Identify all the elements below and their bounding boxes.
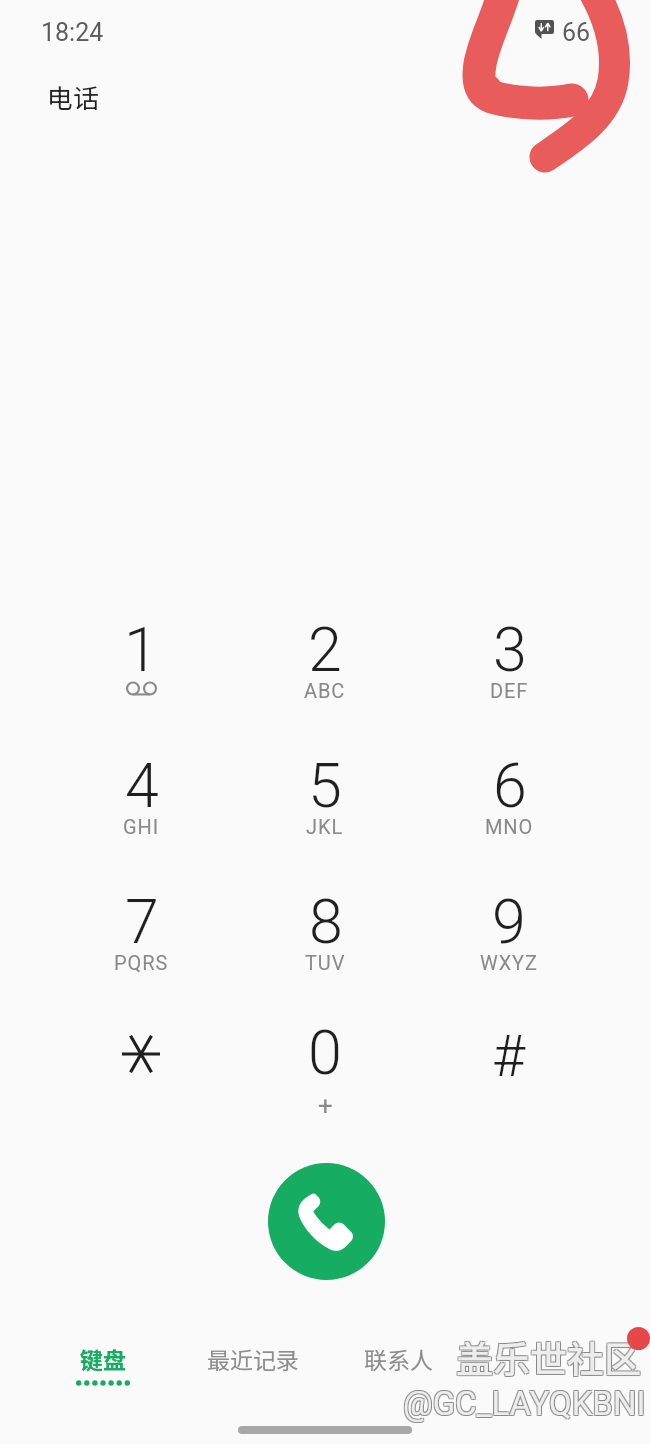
button[interactable]: 键盘 bbox=[25, 1320, 181, 1392]
button[interactable]: 最近记录 bbox=[182, 1320, 323, 1392]
staticText: @GC_LAYQKBNI bbox=[403, 1384, 646, 1423]
staticText: 盖乐世社区 bbox=[455, 1329, 640, 1383]
staticText: 5 bbox=[308, 750, 342, 821]
staticText: @GC_LAYQKBNI bbox=[402, 1385, 645, 1424]
staticText: 7 bbox=[125, 886, 159, 957]
staticText: 盖乐世社区 bbox=[455, 1331, 640, 1385]
button[interactable]: 8 bbox=[265, 878, 385, 990]
button[interactable]: 3 bbox=[449, 606, 569, 718]
staticText: 8 bbox=[309, 886, 343, 957]
button[interactable]: pound bbox=[449, 1009, 569, 1121]
staticText: PQRS bbox=[114, 951, 169, 974]
staticText: 最近记录 bbox=[207, 1342, 299, 1375]
other: Data transfer bbox=[535, 20, 554, 39]
button[interactable]: 联系人 bbox=[340, 1320, 456, 1392]
staticText: ABC bbox=[304, 679, 346, 702]
staticText: @GC_LAYQKBNI bbox=[402, 1383, 645, 1422]
staticText: 18:24 bbox=[41, 18, 104, 47]
staticText: WXYZ bbox=[480, 951, 538, 974]
button[interactable]: 1 bbox=[81, 606, 201, 718]
staticText: 6 bbox=[493, 750, 527, 821]
staticText: @GC_LAYQKBNI bbox=[404, 1385, 647, 1424]
staticText: 4 bbox=[125, 750, 159, 821]
staticText: + bbox=[318, 1091, 333, 1121]
staticText: JKL bbox=[306, 815, 344, 838]
staticText: # bbox=[492, 1023, 526, 1090]
staticText: 0 bbox=[308, 1017, 342, 1088]
staticText: 1 bbox=[124, 614, 158, 685]
button[interactable]: star bbox=[81, 1009, 201, 1121]
staticText: 2 bbox=[308, 614, 342, 685]
staticText: @GC_LAYQKBNI bbox=[404, 1383, 647, 1422]
button[interactable]: 2 bbox=[265, 606, 385, 718]
staticText: 盖乐世社区 bbox=[456, 1330, 641, 1384]
staticText: 盖乐世社区 bbox=[457, 1329, 642, 1383]
button[interactable]: 6 bbox=[449, 742, 569, 854]
button[interactable]: 4 bbox=[81, 742, 201, 854]
staticText: DEF bbox=[490, 679, 529, 702]
button[interactable]: 5 bbox=[265, 742, 385, 854]
staticText: 联系人 bbox=[364, 1342, 433, 1375]
button[interactable]: 7 bbox=[81, 878, 201, 990]
staticText: MNO bbox=[485, 815, 534, 838]
button[interactable]: 9 bbox=[449, 878, 569, 990]
staticText: 键盘 bbox=[80, 1342, 126, 1375]
staticText: TUV bbox=[305, 951, 346, 974]
staticText: 3 bbox=[493, 614, 527, 685]
staticText: 电话 bbox=[47, 78, 100, 116]
staticText: GHI bbox=[123, 815, 160, 838]
button[interactable]: 0 bbox=[265, 1009, 385, 1121]
button[interactable]: Call bbox=[268, 1163, 385, 1280]
staticText: 盖乐世社区 bbox=[457, 1331, 642, 1385]
staticText: 9 bbox=[492, 886, 526, 957]
staticText: 66 bbox=[562, 18, 591, 47]
